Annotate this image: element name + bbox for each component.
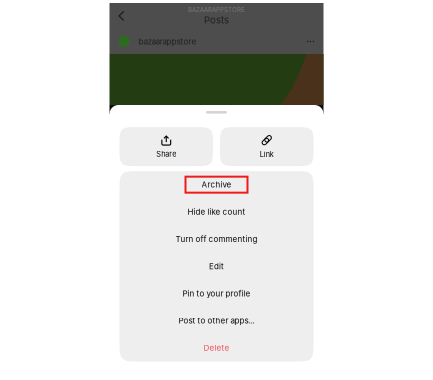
button[interactable]: Delete <box>119 334 313 361</box>
staticText: Post to other apps... <box>178 316 254 326</box>
button[interactable]: Turn off commenting <box>119 225 313 253</box>
button[interactable]: Post to other apps... <box>119 307 313 334</box>
button[interactable]: Archive <box>119 171 313 198</box>
button[interactable]: Edit <box>119 253 313 280</box>
staticText: Link <box>260 150 274 159</box>
staticText: BAZAARAPPSTORE <box>188 6 245 13</box>
staticText: Hide like count <box>187 207 245 217</box>
button[interactable]: Share <box>119 127 213 166</box>
button[interactable]: Hide like count <box>119 198 313 225</box>
button[interactable]: Back <box>109 3 133 29</box>
staticText: Edit <box>209 261 224 271</box>
staticText: Delete <box>203 343 229 353</box>
staticText: bazaarappstore <box>138 37 196 46</box>
staticText: Turn off commenting <box>175 234 257 244</box>
staticText: Archive <box>201 180 231 190</box>
staticText: Pin to your profile <box>182 289 250 298</box>
button[interactable]: Link <box>220 127 313 166</box>
staticText: Share <box>156 150 176 159</box>
staticText: Posts <box>204 14 229 26</box>
button[interactable]: Pin to your profile <box>119 280 313 307</box>
